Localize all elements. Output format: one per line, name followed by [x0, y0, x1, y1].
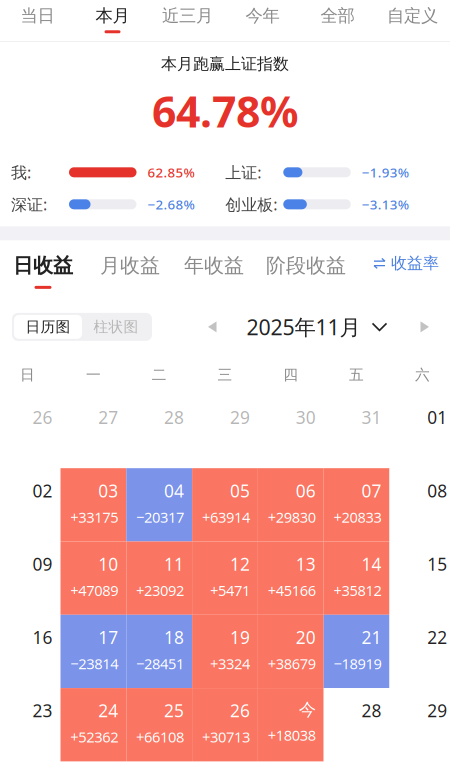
staticText: −18919 [333, 654, 381, 673]
button[interactable]: 本月 [75, 0, 150, 41]
staticText: 全部 [320, 5, 354, 26]
staticText: +29830 [268, 507, 316, 527]
button[interactable]: Previous month [201, 314, 223, 339]
staticText: −2.68% [147, 195, 194, 213]
staticText: 26 [32, 406, 52, 429]
staticText: 2025年11月 [246, 313, 360, 341]
staticText: 30 [296, 406, 316, 429]
staticText: 01 [427, 406, 447, 429]
staticText: 日收益 [13, 253, 73, 278]
staticText: 25 [164, 699, 184, 722]
staticText: 16 [32, 626, 52, 649]
button[interactable]: 年收益 [184, 253, 244, 289]
staticText: 23 [32, 699, 52, 722]
staticText: 06 [296, 479, 316, 502]
button[interactable]: 2025年11月 [246, 313, 387, 341]
staticText: −23814 [70, 654, 118, 673]
staticText: 收益率 [391, 253, 439, 273]
button[interactable]: 今年 [225, 0, 300, 41]
staticText: 09 [32, 552, 52, 575]
staticText: 一 [86, 366, 101, 384]
staticText: 20 [296, 626, 316, 649]
staticText: +66108 [136, 727, 184, 747]
staticText: 12 [230, 552, 250, 575]
button[interactable]: Next month [413, 314, 436, 339]
staticText: 自定义 [387, 5, 438, 26]
staticText: 22 [427, 626, 447, 649]
staticText: 本月跑赢上证指数 [161, 54, 289, 74]
button[interactable]: 柱状图 [82, 315, 150, 339]
button[interactable]: 当日 [0, 0, 75, 41]
staticText: −28451 [136, 654, 184, 673]
staticText: 17 [98, 626, 118, 649]
staticText: 近三月 [162, 5, 213, 26]
staticText: +33175 [70, 507, 118, 527]
staticText: 62.85% [147, 163, 194, 181]
staticText: 21 [361, 626, 381, 649]
staticText: 15 [427, 552, 447, 575]
staticText: 26 [230, 699, 250, 722]
staticText: 本月 [95, 5, 129, 26]
staticText: 27 [98, 406, 118, 429]
staticText: 11 [164, 552, 184, 575]
staticText: 三 [217, 366, 232, 384]
staticText: 四 [283, 366, 298, 384]
staticText: +30713 [202, 727, 250, 747]
staticText: 上证: [225, 162, 261, 183]
button[interactable]: 月收益 [100, 253, 160, 289]
staticText: +47089 [70, 580, 118, 600]
button[interactable]: 近三月 [150, 0, 225, 41]
staticText: 六 [415, 366, 430, 384]
button[interactable]: 收益率 [374, 253, 439, 273]
staticText: 今 [299, 699, 316, 720]
staticText: 14 [361, 552, 381, 575]
button[interactable]: 阶段收益 [266, 253, 346, 289]
staticText: −1.93% [362, 163, 409, 181]
staticText: 10 [98, 552, 118, 575]
staticText: 13 [296, 552, 316, 575]
staticText: 02 [32, 479, 52, 502]
staticText: +3324 [210, 654, 250, 673]
staticText: 当日 [20, 5, 54, 26]
staticText: +52362 [70, 727, 118, 747]
staticText: 08 [427, 479, 447, 502]
staticText: 年收益 [184, 253, 244, 278]
staticText: 深证: [11, 194, 47, 215]
staticText: +45166 [268, 580, 316, 600]
staticText: +38679 [268, 654, 316, 673]
staticText: 日历图 [25, 318, 70, 336]
staticText: +5471 [210, 580, 250, 600]
staticText: 28 [164, 406, 184, 429]
button[interactable]: 日收益 [13, 253, 73, 289]
staticText: 柱状图 [93, 318, 138, 336]
staticText: 03 [98, 479, 118, 502]
button[interactable]: 日历图 [14, 315, 82, 339]
staticText: 今年 [245, 5, 279, 26]
staticText: +23092 [136, 580, 184, 600]
staticText: 二 [152, 366, 167, 384]
staticText: 我: [11, 162, 31, 183]
staticText: +63914 [202, 507, 250, 527]
staticText: 04 [164, 479, 184, 502]
staticText: 64.78% [152, 83, 298, 139]
button[interactable]: 全部 [300, 0, 375, 41]
button[interactable]: 自定义 [375, 0, 450, 41]
staticText: 创业板: [225, 194, 277, 215]
staticText: 07 [361, 479, 381, 502]
staticText: 五 [349, 366, 364, 384]
staticText: 31 [361, 406, 381, 429]
staticText: −3.13% [362, 195, 409, 213]
staticText: 18 [164, 626, 184, 649]
staticText: 日 [20, 366, 35, 384]
staticText: +20833 [333, 507, 381, 527]
staticText: 29 [230, 406, 250, 429]
staticText: +35812 [333, 580, 381, 600]
staticText: 05 [230, 479, 250, 502]
staticText: 阶段收益 [266, 253, 346, 278]
staticText: 29 [427, 699, 447, 722]
staticText: 月收益 [100, 253, 160, 278]
staticText: 28 [361, 699, 381, 722]
staticText: 19 [230, 626, 250, 649]
staticText: −20317 [136, 507, 184, 527]
staticText: +18038 [268, 725, 316, 745]
